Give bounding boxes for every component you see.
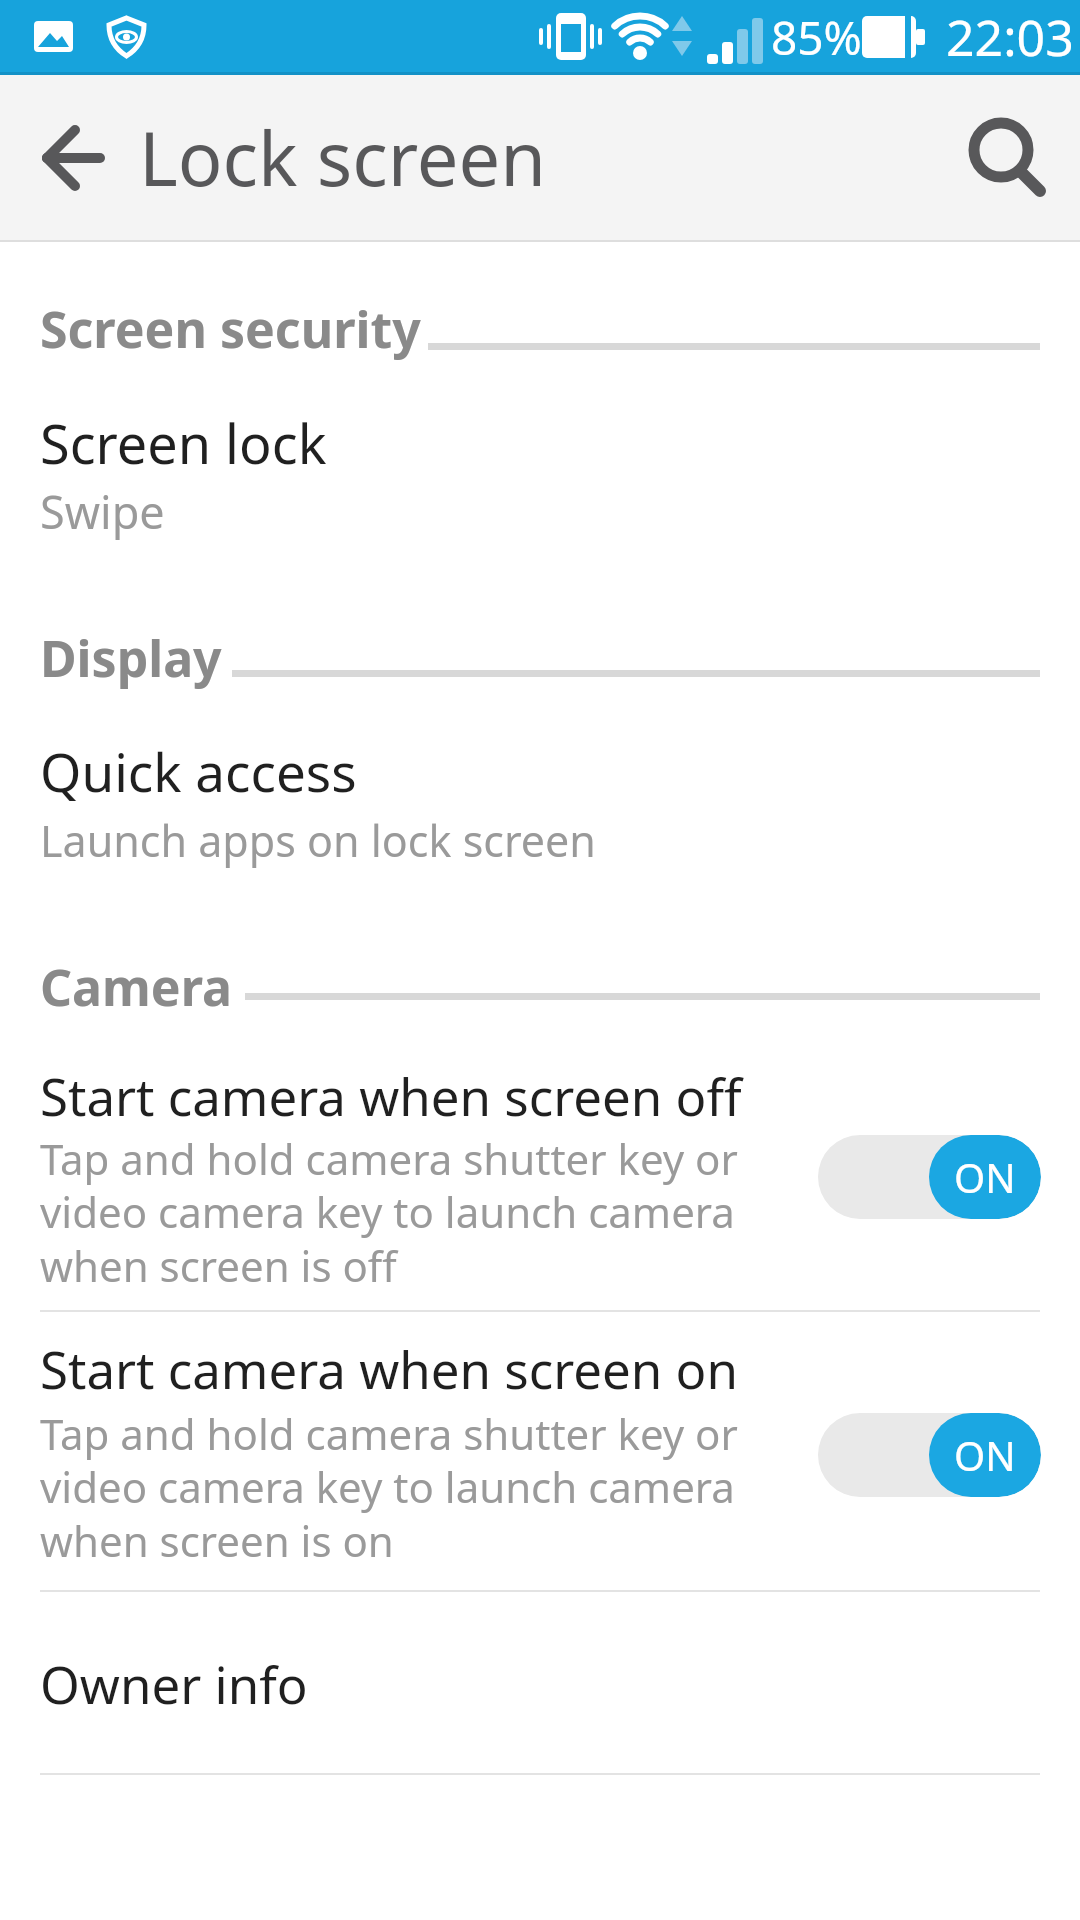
staticText: 22:03 [946, 3, 1074, 71]
button[interactable]: ON [818, 1413, 1041, 1497]
staticText: Camera [40, 953, 232, 1021]
staticText: ON [954, 1150, 1016, 1204]
button[interactable]: ON [818, 1135, 1041, 1219]
staticText: Lock screen [139, 107, 547, 208]
button[interactable]: Screen lock [0, 395, 1080, 565]
button[interactable]: Owner info [0, 1600, 1080, 1773]
staticText: 85% [771, 6, 862, 69]
staticText: Start camera when screen off [40, 1061, 742, 1130]
staticText: Owner info [40, 1649, 308, 1718]
staticText: Quick access [40, 735, 357, 807]
staticText: Screen security [40, 295, 421, 363]
button[interactable]: Start camera when screen off [0, 1050, 1080, 1310]
button[interactable]: Quick access [0, 725, 1080, 890]
staticText: Display [40, 624, 222, 692]
staticText: Swipe [40, 481, 165, 542]
staticText: Tap and hold camera shutter key or video… [40, 1130, 738, 1294]
staticText: Start camera when screen on [40, 1334, 738, 1403]
staticText: ON [954, 1428, 1016, 1482]
staticText: Tap and hold camera shutter key or video… [40, 1405, 738, 1569]
button[interactable] [945, 75, 1080, 240]
button[interactable] [0, 75, 130, 240]
button[interactable]: Start camera when screen on [0, 1312, 1080, 1590]
staticText: Launch apps on lock screen [40, 811, 596, 870]
staticText: Screen lock [40, 406, 327, 480]
